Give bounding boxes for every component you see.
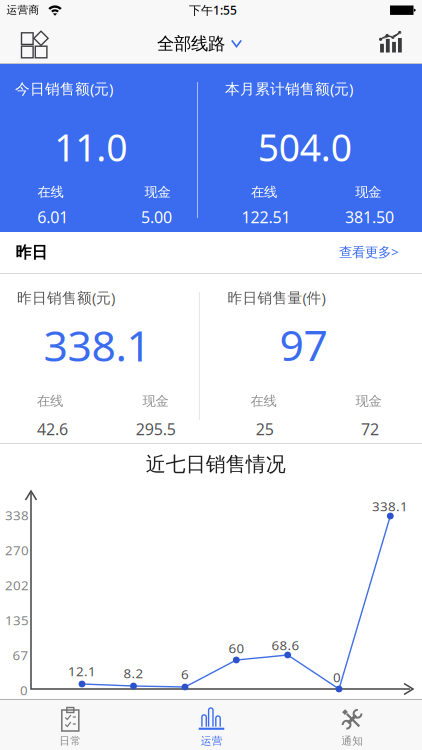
staticText: 270 — [5, 541, 29, 559]
staticText: 在线 — [250, 393, 276, 409]
staticText: 现金 — [142, 393, 168, 409]
staticText: 昨日销售量(件) — [227, 288, 325, 307]
staticText: 运营 — [201, 734, 223, 747]
staticText: 67 — [12, 646, 28, 664]
staticText: 查看更多> — [339, 243, 399, 260]
staticText: 338 — [5, 506, 29, 524]
staticText: 72 — [361, 418, 379, 440]
staticText: 全部线路 — [157, 33, 225, 54]
staticText: 42.6 — [37, 418, 68, 440]
staticText: 日常 — [59, 734, 81, 747]
staticText: 68.6 — [271, 636, 299, 654]
button[interactable]: 通知 — [282, 700, 422, 750]
staticText: 6.01 — [37, 206, 68, 228]
button[interactable]: 日常 — [0, 700, 140, 750]
staticText: 现金 — [144, 184, 170, 200]
staticText: 通知 — [341, 734, 363, 747]
staticText: 昨日销售额(元) — [17, 288, 115, 307]
staticText: 338.1 — [43, 317, 150, 373]
staticText: 202 — [5, 576, 29, 594]
staticText: 本月累计销售额(元) — [225, 79, 353, 98]
staticText: 338.1 — [372, 497, 408, 515]
staticText: 295.5 — [136, 418, 176, 440]
staticText: 运营商 — [6, 3, 39, 16]
staticText: 在线 — [37, 184, 63, 200]
staticText: 12.1 — [68, 662, 96, 680]
staticText: 下午1:55 — [189, 2, 237, 18]
staticText: 5.00 — [141, 206, 172, 228]
staticText: 135 — [5, 611, 29, 629]
staticText: 0 — [20, 681, 28, 699]
button[interactable]: 分类 — [21, 31, 49, 59]
staticText: 504.0 — [258, 122, 352, 172]
staticText: 现金 — [355, 393, 381, 409]
button[interactable]: 运营 — [141, 700, 281, 750]
staticText: 6 — [181, 665, 189, 683]
staticText: 现金 — [355, 184, 381, 200]
staticText: 0 — [333, 668, 341, 686]
staticText: 122.51 — [241, 206, 290, 228]
staticText: 8.2 — [123, 664, 143, 682]
staticText: 60 — [228, 639, 244, 657]
staticText: 昨日 — [15, 243, 47, 262]
staticText: 25 — [256, 418, 274, 440]
staticText: 381.50 — [345, 206, 394, 228]
button[interactable]: 全部线路 — [157, 33, 242, 54]
staticText: 11.0 — [54, 122, 127, 172]
staticText: 今日销售额(元) — [15, 79, 113, 98]
button[interactable]: 统计 — [379, 31, 403, 53]
button[interactable]: 查看更多> — [339, 243, 399, 260]
staticText: 在线 — [37, 393, 63, 409]
staticText: 97 — [279, 316, 327, 373]
staticText: 在线 — [251, 184, 277, 200]
staticText: 近七日销售情况 — [146, 452, 286, 477]
